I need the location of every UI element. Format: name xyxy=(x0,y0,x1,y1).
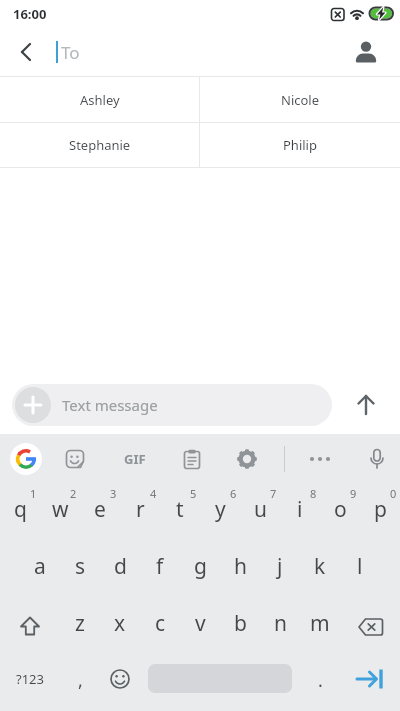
staticText: p xyxy=(374,495,387,524)
staticText: 2 xyxy=(70,486,77,501)
staticText: d xyxy=(114,552,127,581)
staticText: ?123 xyxy=(16,670,44,688)
staticText: 5 xyxy=(190,486,197,501)
staticText: w xyxy=(52,495,69,524)
staticText: Stephanie xyxy=(69,136,131,154)
staticText: u xyxy=(254,495,267,524)
button[interactable] xyxy=(100,655,140,702)
staticText: l xyxy=(357,552,363,581)
staticText: i xyxy=(297,495,303,524)
staticText: f xyxy=(156,552,164,581)
button[interactable]: Stephanie xyxy=(0,123,199,167)
button[interactable] xyxy=(352,38,380,66)
button[interactable]: y xyxy=(200,484,240,541)
button[interactable]: Ashley xyxy=(0,77,199,122)
button[interactable]: Nicole xyxy=(200,77,400,122)
staticText: r xyxy=(136,495,145,524)
button[interactable] xyxy=(227,439,267,479)
staticText: b xyxy=(234,609,247,638)
staticText: s xyxy=(75,552,86,581)
button[interactable]: s xyxy=(60,541,100,598)
button[interactable]: GIF xyxy=(115,434,155,484)
button[interactable]: Philip xyxy=(200,123,400,167)
button[interactable]: r xyxy=(120,484,160,541)
button[interactable] xyxy=(0,598,60,655)
staticText: g xyxy=(194,552,207,581)
button[interactable] xyxy=(0,28,48,76)
staticText: n xyxy=(274,609,287,638)
staticText: h xyxy=(234,552,247,581)
staticText: v xyxy=(195,609,206,638)
button[interactable] xyxy=(55,439,95,479)
staticText: 4 xyxy=(150,486,157,501)
staticText: e xyxy=(94,495,106,524)
button[interactable]: z xyxy=(60,598,100,655)
button[interactable]: d xyxy=(100,541,140,598)
staticText: GIF xyxy=(124,450,146,468)
staticText: c xyxy=(155,609,166,638)
staticText: m xyxy=(310,609,330,638)
staticText: 7 xyxy=(270,486,277,501)
button[interactable] xyxy=(340,598,400,655)
staticText: Text message xyxy=(62,395,158,415)
staticText: t xyxy=(176,495,184,524)
button[interactable]: f xyxy=(140,541,180,598)
button[interactable]: n xyxy=(260,598,300,655)
button[interactable]: x xyxy=(100,598,140,655)
button[interactable]: l xyxy=(340,541,380,598)
button[interactable]: t xyxy=(160,484,200,541)
button[interactable]: i xyxy=(280,484,320,541)
button[interactable]: w xyxy=(40,484,80,541)
button[interactable] xyxy=(357,439,397,479)
staticText: 6 xyxy=(230,486,237,501)
button[interactable] xyxy=(340,655,400,702)
staticText: . xyxy=(318,668,323,693)
button[interactable]: m xyxy=(300,598,340,655)
staticText: , xyxy=(78,668,83,693)
staticText: z xyxy=(75,609,85,638)
staticText: 9 xyxy=(350,486,357,501)
button[interactable]: o xyxy=(320,484,360,541)
staticText: 16:00 xyxy=(13,5,47,23)
staticText: x xyxy=(114,609,126,638)
staticText: a xyxy=(34,552,46,581)
button[interactable]: c xyxy=(140,598,180,655)
button[interactable]: j xyxy=(260,541,300,598)
staticText: y xyxy=(215,495,226,524)
staticText: 8 xyxy=(310,486,317,501)
staticText: 1 xyxy=(30,486,37,501)
button[interactable] xyxy=(300,439,340,479)
staticText: o xyxy=(334,495,347,524)
staticText: To xyxy=(61,41,80,64)
button[interactable]: ?123 xyxy=(0,655,60,702)
button[interactable] xyxy=(15,387,51,423)
button[interactable]: u xyxy=(240,484,280,541)
button[interactable]: v xyxy=(180,598,220,655)
button[interactable] xyxy=(140,655,300,702)
button[interactable]: Text message xyxy=(12,384,332,426)
button[interactable]: , xyxy=(60,655,100,702)
button[interactable]: . xyxy=(300,655,340,702)
staticText: Nicole xyxy=(281,91,320,109)
button[interactable]: p xyxy=(360,484,400,541)
button[interactable]: b xyxy=(220,598,260,655)
staticText: Ashley xyxy=(80,91,120,109)
staticText: Philip xyxy=(283,136,317,154)
button[interactable]: a xyxy=(20,541,60,598)
staticText: 0 xyxy=(390,486,397,501)
staticText: j xyxy=(277,552,283,581)
button[interactable]: g xyxy=(180,541,220,598)
button[interactable]: q xyxy=(0,484,40,541)
button[interactable] xyxy=(332,376,400,434)
button[interactable]: e xyxy=(80,484,120,541)
button[interactable]: k xyxy=(300,541,340,598)
button[interactable] xyxy=(10,443,42,475)
button[interactable] xyxy=(172,439,212,479)
staticText: k xyxy=(314,552,326,581)
staticText: 3 xyxy=(110,486,117,501)
button[interactable]: h xyxy=(220,541,260,598)
staticText: q xyxy=(14,495,27,524)
